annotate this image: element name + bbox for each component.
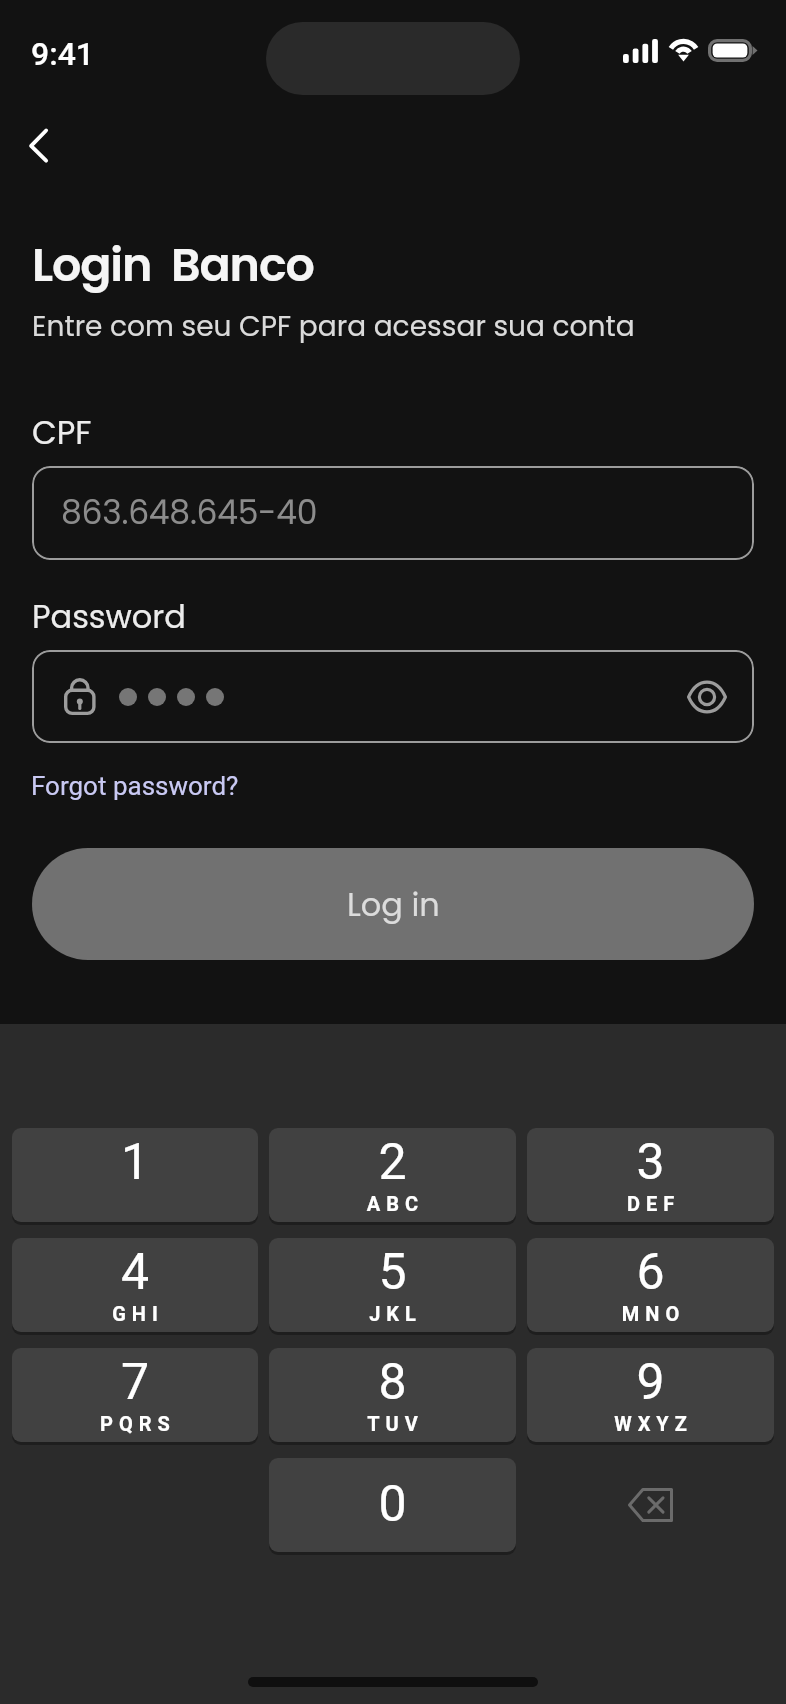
staticText: DEF (530, 1192, 774, 1215)
staticText: 0 (269, 1475, 516, 1534)
button[interactable]: 4 (12, 1238, 258, 1332)
staticText: ABC (272, 1192, 516, 1215)
button[interactable]: Log in (32, 848, 754, 960)
staticText: WXYZ (530, 1412, 774, 1435)
staticText: Forgot password? (31, 771, 239, 801)
button[interactable]: Backspace (527, 1458, 774, 1552)
button[interactable]: 5 (269, 1238, 516, 1332)
staticText: MNO (530, 1302, 774, 1325)
button[interactable]: 2 (269, 1128, 516, 1222)
staticText: Password (32, 594, 186, 639)
button[interactable]: Back (12, 119, 66, 173)
staticText: 7 (12, 1353, 258, 1412)
staticText: GHI (15, 1302, 258, 1325)
button[interactable]: Show password (32, 650, 754, 743)
button[interactable]: 863.648.645-40 (32, 466, 754, 560)
staticText: TUV (272, 1412, 516, 1435)
button[interactable]: 6 (527, 1238, 774, 1332)
staticText: Entre com seu CPF para acessar sua conta (32, 307, 635, 346)
staticText: 9 (527, 1353, 774, 1412)
staticText: 2 (269, 1133, 516, 1192)
button[interactable]: 9 (527, 1348, 774, 1442)
staticText: PQRS (15, 1412, 258, 1435)
button[interactable]: 0 (269, 1458, 516, 1552)
staticText: 4 (12, 1243, 258, 1302)
staticText: 3 (527, 1133, 774, 1192)
staticText: 8 (269, 1353, 516, 1412)
staticText: JKL (272, 1302, 516, 1325)
staticText: Log in (347, 882, 440, 927)
staticText: CPF (32, 410, 92, 455)
button[interactable]: 8 (269, 1348, 516, 1442)
staticText: Login Banco (32, 233, 314, 297)
staticText: 1 (12, 1133, 258, 1192)
staticText: 863.648.645-40 (61, 489, 318, 535)
button[interactable]: 3 (527, 1128, 774, 1222)
staticText: 5 (269, 1243, 516, 1302)
staticText: 6 (527, 1243, 774, 1302)
button[interactable]: Forgot password? (31, 771, 239, 801)
button[interactable]: 7 (12, 1348, 258, 1442)
staticText: 9:41 (31, 35, 95, 73)
button[interactable]: 1 (12, 1128, 258, 1222)
button[interactable]: Show password (680, 670, 734, 724)
